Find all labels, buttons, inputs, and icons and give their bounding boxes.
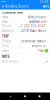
staticText: Downtown Station: [21, 39, 46, 43]
button[interactable]: Address: [0, 29, 50, 33]
button[interactable]: Back: [6, 92, 14, 100]
staticText: Paid: [38, 49, 44, 52]
staticText: 12:30: [39, 0, 48, 3]
staticText: alex@mail.com: [29, 20, 46, 23]
button[interactable]: Name: [0, 15, 50, 19]
button[interactable]: Home: [21, 92, 29, 100]
staticText: CUSTOMER INFO: [2, 11, 23, 14]
staticText: 221B Baker Street: [21, 29, 46, 33]
staticText: Alex Johnson: [28, 15, 46, 19]
staticText: Name: [2, 15, 9, 19]
staticText: Email: [2, 20, 8, 23]
button[interactable]: Drop: [0, 43, 50, 48]
staticText: Add a note…: [2, 60, 20, 63]
button[interactable]: Phone: [0, 24, 50, 29]
staticText: Status: [2, 49, 9, 52]
button[interactable]: Status: [0, 48, 50, 54]
staticText: SAVE: [43, 5, 49, 8]
button[interactable]: SAVE: [41, 3, 50, 9]
staticText: Phone: [2, 24, 12, 28]
button[interactable]: Email: [0, 20, 50, 24]
button[interactable]: Back: [0, 3, 5, 9]
staticText: TRIP: [2, 35, 9, 38]
staticText: Drop: [2, 44, 9, 47]
button[interactable]: Add a note…: [0, 59, 50, 64]
staticText: Address: [2, 29, 13, 33]
staticText: Airport T2: [32, 44, 46, 47]
button[interactable]: Recents: [35, 92, 43, 100]
staticText: +1 202 555 0147: [19, 24, 46, 28]
staticText: Booking Details: [5, 5, 28, 8]
button[interactable]: Pickup: [0, 39, 50, 43]
staticText: NOTE: [2, 55, 9, 58]
staticText: Pickup: [2, 39, 11, 43]
